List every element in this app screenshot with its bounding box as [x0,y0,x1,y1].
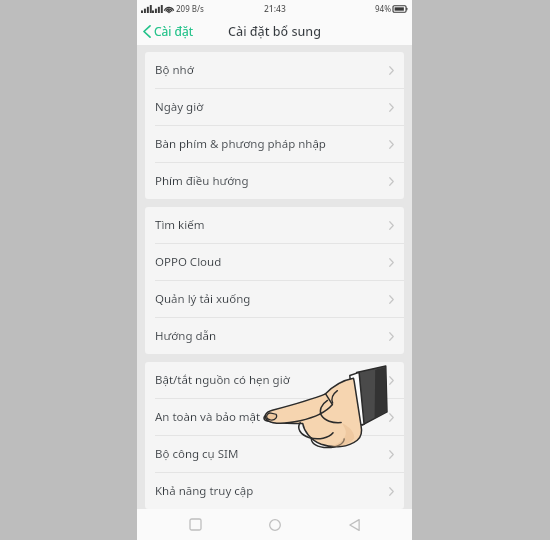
staticText: Khả năng truy cập [155,483,389,499]
button[interactable]: Khả năng truy cập [145,473,404,509]
button[interactable]: Back [332,509,376,540]
button[interactable]: Cài đặt [137,17,202,45]
staticText: Bộ công cụ SIM [155,446,389,462]
staticText: Tìm kiếm [155,217,389,233]
staticText: Cài đặt [154,23,194,39]
staticText: OPPO Cloud [155,254,389,270]
staticText: 21:43 [264,3,286,15]
button[interactable]: Bật/tắt nguồn có hẹn giờ [145,362,404,398]
staticText: An toàn và bảo mật [155,409,389,425]
button[interactable]: Recent apps [173,509,217,540]
staticText: Bàn phím & phương pháp nhập [155,136,389,152]
button[interactable]: An toàn và bảo mật [145,399,404,435]
staticText: Quản lý tải xuống [155,291,389,307]
staticText: 94% [375,3,391,14]
staticText: 209 B/s [176,3,205,14]
button[interactable]: OPPO Cloud [145,244,404,280]
button[interactable]: Tìm kiếm [145,207,404,243]
staticText: Hướng dẫn [155,328,389,344]
button[interactable]: Quản lý tải xuống [145,281,404,317]
staticText: Ngày giờ [155,99,389,115]
button[interactable]: Bộ nhớ [145,52,404,88]
button[interactable]: Bộ công cụ SIM [145,436,404,472]
staticText: Bộ nhớ [155,62,389,78]
button[interactable]: Bàn phím & phương pháp nhập [145,126,404,162]
button[interactable]: Home [253,509,297,540]
staticText: Cài đặt bổ sung [228,23,321,40]
button[interactable]: Hướng dẫn [145,318,404,354]
button[interactable]: Ngày giờ [145,89,404,125]
staticText: Phím điều hướng [155,173,389,189]
staticText: Bật/tắt nguồn có hẹn giờ [155,372,389,388]
button[interactable]: Phím điều hướng [145,163,404,199]
